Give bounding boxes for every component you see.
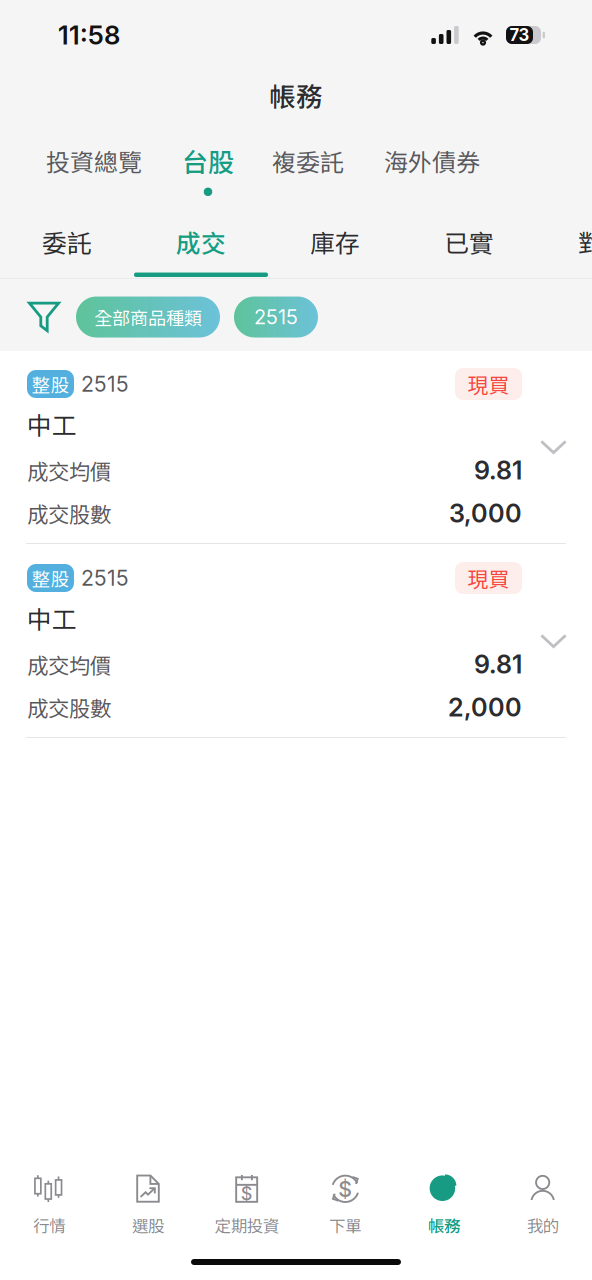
button[interactable]: 行情 [0,1175,99,1237]
button[interactable]: Filter [28,301,60,332]
staticText: $ [241,1183,253,1205]
staticText: 選股 [132,1213,164,1237]
button[interactable]: 選股 [99,1175,197,1237]
staticText: 已實 [444,224,494,259]
staticText: 2515 [254,305,298,329]
staticText: 行情 [33,1213,65,1237]
staticText: 庫存 [310,224,360,259]
button[interactable]: 2515 [234,296,318,337]
staticText: 11:58 [58,19,120,51]
staticText: 成交均價 [27,455,111,486]
staticText: 複委託 [272,143,344,178]
staticText: 投資總覽 [46,143,142,178]
staticText: $ [338,1176,352,1202]
staticText: 成交股數 [27,692,111,723]
staticText: 成交股數 [27,498,111,529]
staticText: 2,000 [448,692,522,723]
button[interactable]: 我的 [493,1175,592,1237]
staticText: 73 [509,25,529,45]
button[interactable]: 海外債券 [384,143,480,195]
button[interactable]: 整股 [0,351,592,543]
staticText: 定期投資 [215,1213,279,1237]
staticText: 成交 [176,224,226,259]
staticText: 3,000 [449,498,522,529]
staticText: 中工 [27,600,77,636]
button[interactable]: 投資總覽 [46,143,142,195]
staticText: 帳務 [269,76,323,114]
staticText: 中工 [27,406,77,442]
staticText: 整股 [31,564,69,591]
button[interactable]: 已實 [402,203,536,279]
staticText: 台股 [182,142,234,179]
button[interactable]: 複委託 [272,143,344,195]
staticText: 委託 [42,224,92,259]
button[interactable]: 對帳 [536,203,592,279]
staticText: 整股 [31,370,69,397]
staticText: 成交均價 [27,649,111,680]
button[interactable]: 委託 [0,203,134,279]
staticText: 2515 [81,565,129,591]
staticText: 帳務 [428,1213,460,1237]
staticText: 9.81 [474,455,522,486]
button[interactable]: $ [197,1175,296,1237]
staticText: 下單 [329,1213,361,1237]
button[interactable]: 台股 [182,142,234,196]
staticText: 現買 [467,563,509,593]
button[interactable]: 整股 [0,545,592,737]
button[interactable]: 全部商品種類 [76,296,220,337]
button[interactable]: 庫存 [268,203,402,279]
button[interactable]: 帳務 [395,1175,493,1237]
button[interactable]: $ [296,1175,395,1237]
staticText: 全部商品種類 [94,304,202,330]
staticText: 現買 [467,369,509,399]
staticText: 海外債券 [384,143,480,178]
staticText: 9.81 [474,649,522,680]
staticText: 對帳 [578,224,592,259]
staticText: 2515 [81,371,129,397]
staticText: 我的 [527,1213,559,1237]
button[interactable]: 成交 [134,203,268,279]
